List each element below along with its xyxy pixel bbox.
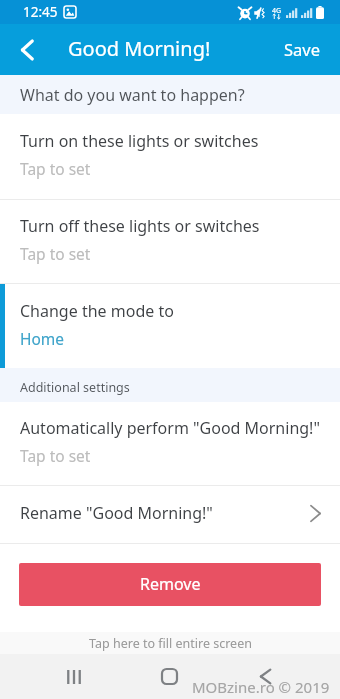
staticText: MOBzine.ro © 2019 — [192, 677, 330, 697]
button[interactable]: Turn on these lights or switches — [0, 114, 340, 199]
staticText: Save — [284, 38, 321, 60]
staticText: Tap to set — [20, 158, 91, 179]
staticText: Rename "Good Morning!" — [20, 502, 310, 524]
staticText: 4G — [272, 6, 282, 16]
staticText: Good Morning! — [68, 35, 211, 62]
staticText: Remove — [140, 573, 201, 595]
staticText: Turn on these lights or switches — [20, 130, 259, 152]
staticText: Tap here to fill entire screen — [89, 635, 252, 652]
button[interactable]: Rename "Good Morning!" — [0, 486, 340, 543]
button[interactable]: Back — [7, 30, 47, 70]
staticText: Tap to set — [20, 445, 91, 466]
button[interactable]: Change the mode to — [0, 284, 340, 368]
staticText: Change the mode to — [20, 300, 174, 322]
button[interactable]: Automatically perform "Good Morning!" — [0, 402, 340, 485]
staticText: What do you want to happen? — [20, 84, 245, 106]
staticText: Automatically perform "Good Morning!" — [20, 417, 320, 439]
button[interactable]: Turn off these lights or switches — [0, 200, 340, 283]
button[interactable]: Remove — [19, 563, 321, 606]
staticText: Turn off these lights or switches — [20, 215, 260, 237]
staticText: Home — [20, 328, 65, 349]
button[interactable]: Save — [265, 27, 340, 73]
staticText: Tap to set — [20, 243, 91, 264]
staticText: Additional settings — [20, 379, 130, 396]
staticText: 12:45 — [23, 3, 58, 21]
button[interactable]: Back — [241, 654, 289, 699]
button[interactable]: Home — [145, 654, 193, 699]
button[interactable]: Recent apps — [50, 654, 98, 699]
